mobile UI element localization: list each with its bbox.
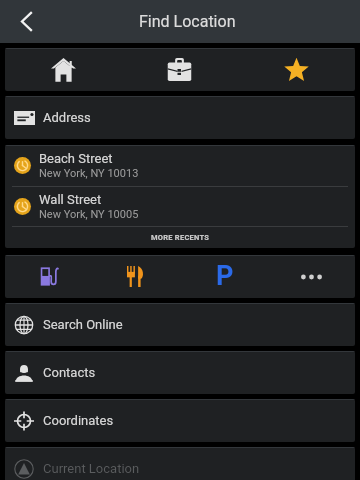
staticText: New York, NY 10005: [39, 208, 139, 221]
staticText: Beach Street: [39, 151, 113, 166]
button[interactable]: Parking: [179, 255, 267, 298]
button[interactable]: Coordinates: [5, 399, 355, 442]
button[interactable]: More: [267, 255, 355, 298]
button[interactable]: Wall Street: [5, 186, 355, 227]
button[interactable]: Restaurants: [92, 255, 179, 298]
button[interactable]: Current Location: [5, 447, 355, 480]
button[interactable]: Contacts: [5, 351, 355, 394]
staticText: MORE RECENTS: [151, 233, 210, 242]
button[interactable]: Search Online: [5, 303, 355, 346]
staticText: Coordinates: [43, 413, 114, 428]
button[interactable]: Favorites: [238, 48, 355, 91]
button[interactable]: Gas stations: [5, 255, 92, 298]
button[interactable]: Work: [121, 48, 238, 91]
staticText: Address: [43, 110, 91, 125]
staticText: Contacts: [43, 365, 96, 380]
staticText: P: [216, 260, 234, 292]
button[interactable]: Address: [5, 96, 355, 139]
button[interactable]: Beach Street: [5, 145, 355, 186]
button[interactable]: Home: [5, 48, 121, 91]
button[interactable]: MORE RECENTS: [5, 227, 355, 248]
staticText: Wall Street: [39, 192, 102, 207]
staticText: Find Location: [139, 12, 236, 31]
staticText: New York, NY 10013: [39, 167, 139, 180]
button[interactable]: Back: [0, 0, 53, 43]
staticText: Current Location: [43, 461, 140, 476]
staticText: Search Online: [43, 317, 123, 332]
